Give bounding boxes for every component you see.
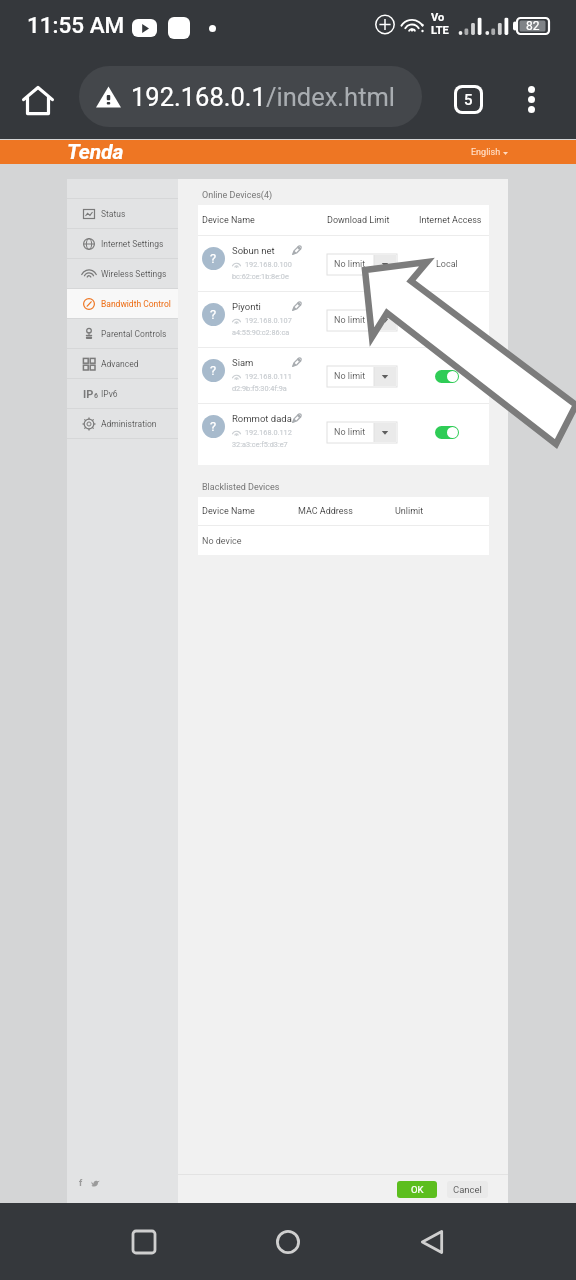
staticText: English — [471, 147, 501, 158]
button[interactable]: Back — [406, 1216, 458, 1268]
staticText: No limit — [334, 427, 366, 438]
staticText: 192.168.0.100 — [245, 260, 292, 269]
button[interactable]: Home — [262, 1216, 314, 1268]
staticText: Sobun net — [232, 245, 275, 256]
button[interactable]: IP — [67, 379, 178, 408]
button[interactable]: Internet access — [435, 314, 459, 327]
staticText: Vo — [431, 11, 445, 24]
button[interactable]: Cancel — [447, 1181, 488, 1198]
button[interactable]: Wireless Settings — [67, 259, 178, 288]
staticText: Siam — [232, 357, 254, 368]
staticText: 5 — [464, 91, 473, 109]
staticText: Tenda — [67, 140, 124, 164]
staticText: Parental Controls — [101, 329, 178, 339]
button[interactable]: Edit name — [292, 357, 302, 367]
staticText: 192.168.0.107 — [245, 316, 292, 325]
staticText: Download Limit — [327, 215, 390, 226]
staticText: Device Name — [202, 506, 255, 517]
button[interactable]: Bandwidth Control — [67, 289, 178, 318]
staticText: Rommot dada — [232, 413, 292, 424]
staticText: d2:9b:f5:30:4f:9a — [232, 384, 287, 393]
staticText: IPv6 — [101, 389, 178, 399]
staticText: Local — [436, 259, 458, 270]
staticText: ? — [210, 251, 217, 266]
staticText: ? — [210, 363, 217, 378]
staticText: ? — [210, 419, 217, 434]
staticText: 192.168.0.112 — [245, 428, 292, 437]
staticText: ? — [210, 307, 217, 322]
staticText: f — [79, 1178, 83, 1189]
staticText: 6 — [94, 392, 95, 400]
staticText: Unlimit — [395, 506, 424, 517]
staticText: /index.html — [266, 82, 396, 112]
button[interactable]: No limit — [327, 254, 397, 275]
button[interactable]: Administration — [67, 409, 178, 438]
button[interactable]: Tabs — [440, 71, 496, 127]
staticText: Administration — [101, 419, 178, 429]
button[interactable]: Status — [67, 199, 178, 228]
staticText: No limit — [334, 259, 366, 270]
button[interactable]: English — [471, 147, 508, 158]
staticText: Advanced — [101, 359, 178, 369]
staticText: 192.168.0.111 — [245, 372, 292, 381]
staticText: No limit — [334, 315, 366, 326]
staticText: a4:55:90:c2:86:ca — [232, 328, 290, 337]
button[interactable]: Home — [14, 76, 62, 124]
button[interactable]: 192.168.0.1 — [79, 66, 422, 127]
button[interactable]: Edit name — [292, 245, 302, 255]
staticText: Wireless Settings — [101, 269, 178, 279]
staticText: Device Name — [202, 215, 255, 226]
button[interactable]: Internet Settings — [67, 229, 178, 258]
staticText: bc:62:ce:1b:8e:0e — [232, 272, 289, 281]
staticText: Status — [101, 209, 178, 219]
staticText: LTE — [431, 24, 449, 37]
staticText: No device — [202, 536, 242, 547]
staticText: 11:55 AM — [27, 12, 125, 38]
button[interactable]: No limit — [327, 366, 397, 387]
button[interactable]: Advanced — [67, 349, 178, 378]
button[interactable]: No limit — [327, 422, 397, 443]
button[interactable]: No limit — [327, 310, 397, 331]
button[interactable]: Parental Controls — [67, 319, 178, 348]
staticText: 82 — [526, 19, 540, 33]
button[interactable]: More options — [507, 71, 555, 127]
staticText: Bandwidth Control — [101, 299, 178, 309]
staticText: No limit — [334, 371, 366, 382]
staticText: Internet Settings — [101, 239, 178, 249]
staticText: Blacklisted Devices — [202, 482, 280, 493]
button[interactable]: Internet access — [435, 426, 459, 439]
button[interactable]: OK — [397, 1181, 437, 1198]
staticText: 192.168.0.1 — [131, 82, 266, 112]
staticText: Piyonti — [232, 301, 261, 312]
button[interactable]: Internet access — [435, 370, 459, 383]
staticText: 32:a3:ce:f5:d3:e7 — [232, 440, 288, 449]
staticText: Cancel — [453, 1184, 482, 1195]
button[interactable]: Recent apps — [118, 1216, 170, 1268]
staticText: Online Devices(4) — [202, 190, 273, 201]
button[interactable]: Edit name — [292, 413, 302, 423]
staticText: IP — [83, 388, 94, 400]
button[interactable]: Edit name — [292, 301, 302, 311]
staticText: OK — [411, 1184, 424, 1195]
staticText: MAC Address — [298, 506, 353, 517]
staticText: Internet Access — [419, 215, 482, 226]
